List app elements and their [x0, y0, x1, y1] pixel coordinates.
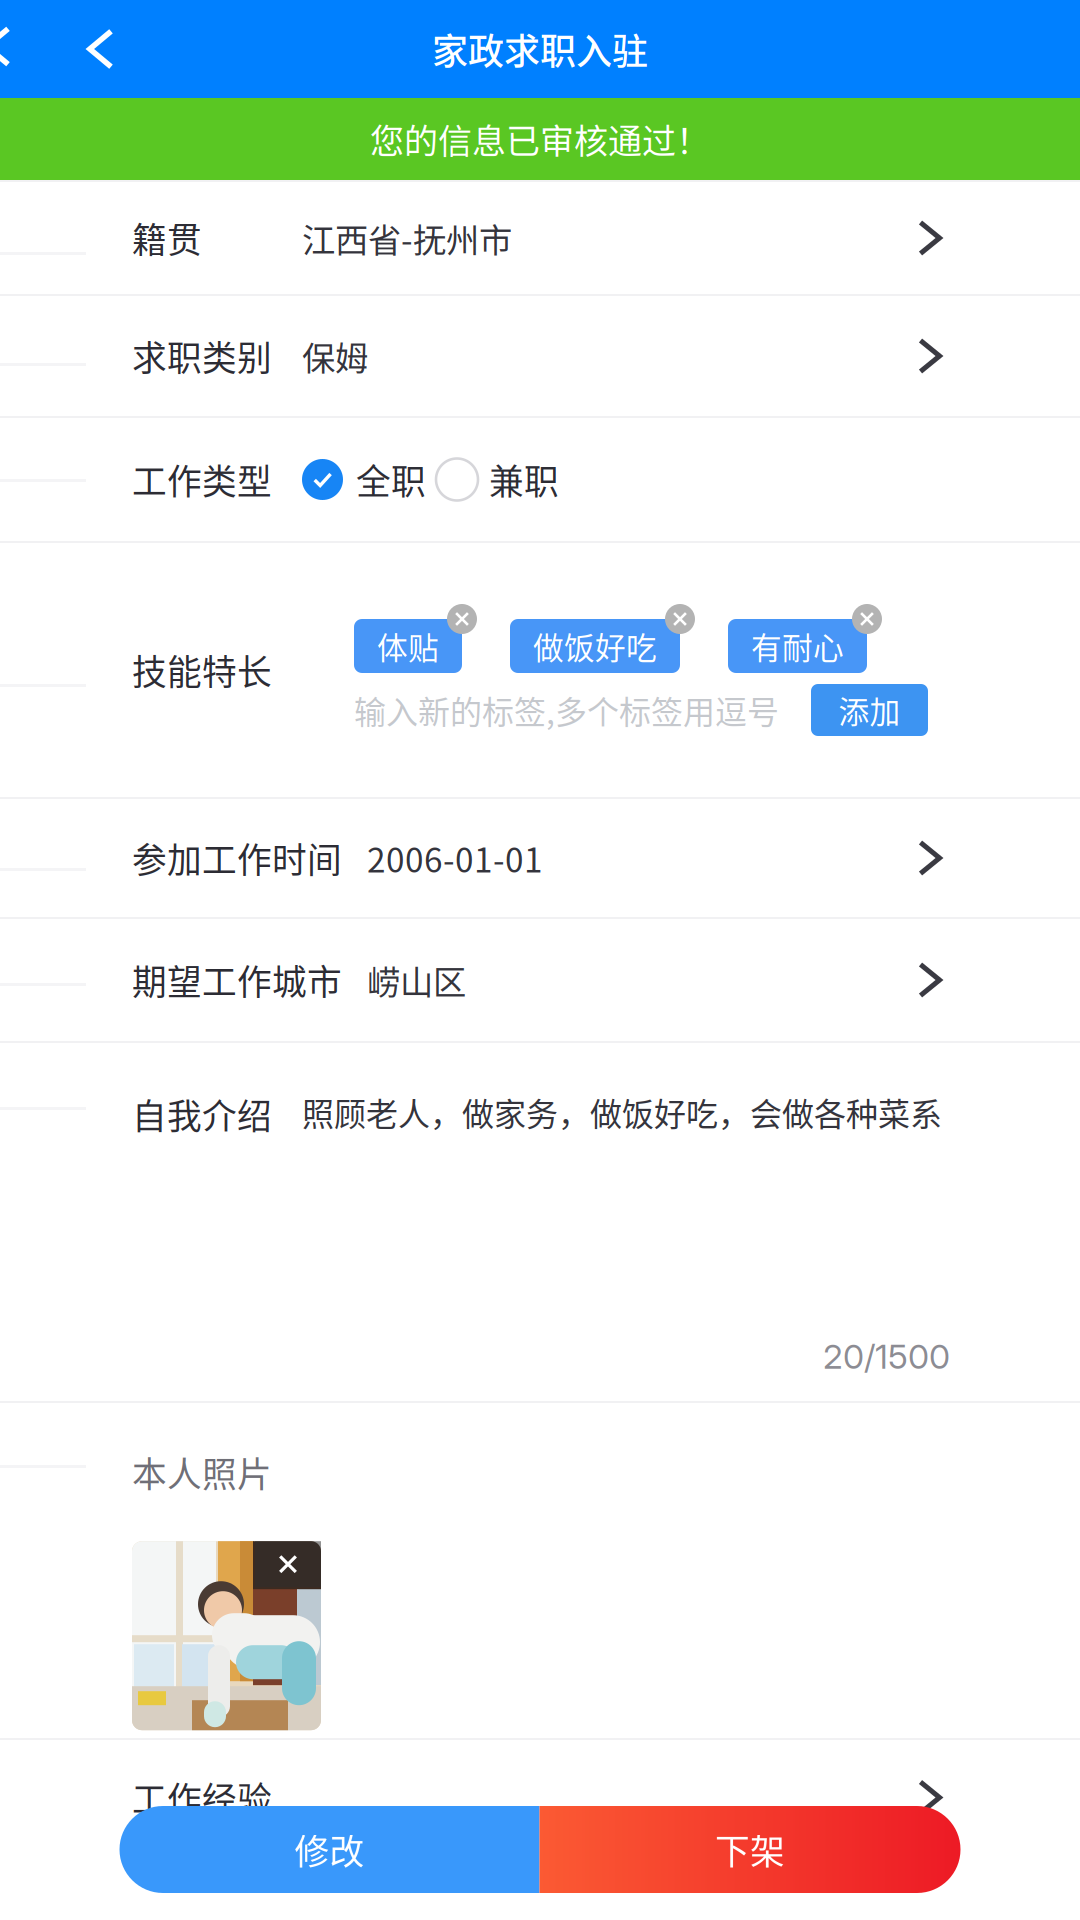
button[interactable]: 求职类别: [0, 296, 1080, 416]
staticText: 20/1500: [823, 1336, 950, 1377]
staticText: 输入新的标签,多个标签用逗号: [354, 687, 779, 733]
staticText: 本人照片: [132, 1447, 272, 1497]
staticText: 崂山区: [367, 956, 466, 1004]
button[interactable]: 参加工作时间: [0, 799, 1080, 917]
staticText: 照顾老人，做家务，做饭好吃，会做各种菜系: [302, 1089, 942, 1135]
button[interactable]: 工作经验: [0, 1740, 1080, 1855]
staticText: 江西省-抚州市: [302, 214, 512, 262]
button[interactable]: Remove tag 有耐心: [852, 604, 882, 634]
staticText: 添加: [838, 688, 900, 732]
staticText: 您的信息已审核通过！: [370, 114, 710, 164]
button[interactable]: 兼职: [436, 454, 559, 505]
staticText: 求职类别: [132, 331, 272, 381]
button[interactable]: Remove photo: [255, 1541, 321, 1587]
staticText: 期望工作城市: [132, 955, 342, 1005]
staticText: 有耐心: [751, 624, 844, 668]
staticText: 工作经验: [132, 1772, 272, 1823]
button[interactable]: 修改: [119, 1806, 539, 1893]
button[interactable]: 添加: [811, 684, 928, 736]
button[interactable]: 下架: [539, 1806, 960, 1893]
staticText: 2006-01-01: [367, 834, 543, 882]
staticText: 做饭好吃: [533, 624, 657, 668]
staticText: 体贴: [377, 624, 439, 668]
button[interactable]: 期望工作城市: [0, 919, 1080, 1041]
button[interactable]: Remove tag 做饭好吃: [665, 604, 695, 634]
staticText: 参加工作时间: [132, 833, 342, 883]
staticText: 修改: [294, 1824, 364, 1875]
button[interactable]: Back: [0, 0, 114, 98]
staticText: 兼职: [489, 454, 559, 505]
button[interactable]: 籍贯: [0, 182, 1080, 294]
staticText: 全职: [356, 454, 426, 505]
button[interactable]: 全职: [302, 454, 426, 505]
staticText: 保姆: [302, 332, 368, 380]
staticText: 工作类型: [132, 454, 272, 505]
staticText: 下架: [715, 1824, 785, 1875]
button[interactable]: Remove tag 体贴: [447, 604, 477, 634]
staticText: 技能特长: [132, 645, 272, 695]
staticText: 自我介绍: [132, 1089, 272, 1139]
staticText: 籍贯: [132, 213, 202, 263]
staticText: 家政求职入驻: [432, 23, 648, 75]
